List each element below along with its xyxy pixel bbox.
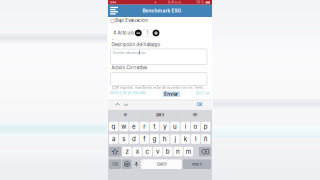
staticText: ✦ [154, 0, 157, 4]
button[interactable]: w [119, 122, 128, 131]
button[interactable]: x [132, 147, 142, 156]
button[interactable]: i [181, 122, 190, 131]
staticText: Al registrar, manifiesto estar de acuerd… [116, 86, 206, 89]
staticText: Descripción del hallazgo: [111, 42, 161, 47]
staticText: Bajo Evaluación [115, 18, 148, 23]
button[interactable]: a [109, 134, 118, 144]
staticText: 123 [112, 162, 118, 167]
staticText: l [195, 135, 196, 143]
button[interactable]: Decrease [135, 30, 142, 36]
staticText: u [173, 123, 177, 130]
button[interactable]: Accept terms [113, 86, 115, 89]
button[interactable]: k [181, 134, 190, 144]
staticText: j [174, 135, 175, 143]
staticText: s [122, 135, 125, 143]
button[interactable]: space [141, 159, 182, 169]
staticText: a [112, 135, 115, 143]
button[interactable]: Bajo Evaluación [111, 19, 114, 23]
button[interactable]: u [170, 122, 180, 131]
staticText: ñ [204, 135, 208, 143]
button[interactable]: return [183, 159, 211, 169]
staticText: v [156, 148, 159, 155]
button[interactable]: v [153, 147, 162, 156]
staticText: r [143, 123, 145, 130]
button[interactable]: Dictate [133, 159, 140, 169]
staticText: q [112, 123, 116, 130]
staticText: 9:41 a.m. [168, 0, 182, 4]
button[interactable]: g [150, 134, 159, 144]
button[interactable]: b [163, 147, 173, 156]
staticText: k [184, 135, 187, 143]
staticText: h [163, 135, 167, 143]
staticText: n [176, 148, 180, 155]
staticText: f [143, 135, 145, 143]
staticText: Política de privacidad [109, 90, 145, 95]
staticText: space [156, 162, 166, 167]
button[interactable]: el [108, 112, 143, 118]
button[interactable]: t [150, 122, 159, 131]
button[interactable]: r [140, 122, 149, 131]
staticText: d [132, 135, 136, 143]
button[interactable]: p [201, 122, 210, 131]
staticText: t [154, 123, 156, 130]
staticText: Acción Correctiva: [111, 65, 147, 70]
button[interactable]: Delete [199, 147, 211, 156]
button[interactable]: y [160, 122, 169, 131]
button[interactable]: Previous field [115, 103, 120, 107]
button[interactable]: Enviar [163, 91, 180, 97]
button[interactable]: Change keyboard [122, 159, 132, 169]
staticText: OK [196, 102, 202, 107]
staticText: i [185, 123, 186, 130]
button[interactable]: Next field [124, 103, 129, 107]
button[interactable]: para [143, 112, 177, 118]
button[interactable]: n [173, 147, 183, 156]
staticText: g [153, 135, 157, 143]
button[interactable]: e [129, 122, 139, 131]
button[interactable]: m [184, 147, 193, 156]
staticText: w [121, 123, 126, 130]
button[interactable]: j [170, 134, 180, 144]
button[interactable]: Shift [109, 147, 121, 156]
button[interactable]: OK [196, 102, 202, 107]
staticText: el [124, 112, 127, 117]
staticText: return [192, 162, 202, 167]
staticText: Borrar [196, 90, 210, 96]
staticText: o [193, 123, 197, 130]
button[interactable]: ñ [201, 134, 210, 144]
button[interactable]: Borrar [196, 90, 210, 96]
staticText: z [125, 148, 128, 155]
button[interactable]: Increase [153, 30, 159, 36]
staticText: para [156, 112, 164, 117]
button[interactable]: c [143, 147, 152, 156]
staticText: 1 [146, 30, 148, 35]
button[interactable]: 123 [109, 159, 121, 169]
button[interactable]: o [191, 122, 200, 131]
button[interactable]: f [140, 134, 149, 144]
staticText: en [193, 112, 197, 117]
button[interactable]: h [160, 134, 169, 144]
staticText: ●●● [110, 1, 116, 4]
button[interactable]: l [191, 134, 200, 144]
staticText: Enviar [164, 91, 178, 97]
staticText: m [186, 148, 191, 155]
button[interactable]: s [119, 134, 128, 144]
staticText: p [204, 123, 208, 130]
button[interactable]: q [109, 122, 118, 131]
staticText: # Artículos [113, 30, 136, 35]
staticText: y [163, 123, 166, 130]
button[interactable]: d [129, 134, 139, 144]
button[interactable]: z [122, 147, 132, 156]
button[interactable]: Política de privacidad [109, 90, 145, 95]
staticText: 78 % [196, 0, 204, 4]
button[interactable]: en [178, 112, 212, 118]
staticText: e [132, 123, 136, 130]
staticText: b [166, 148, 170, 155]
staticText: Escribir observación [113, 50, 146, 55]
staticText: * [112, 38, 114, 42]
staticText: Benchmark ESG [142, 8, 181, 14]
staticText: c [145, 148, 149, 155]
staticText: x [136, 148, 139, 155]
button[interactable]: Menu [110, 7, 118, 15]
